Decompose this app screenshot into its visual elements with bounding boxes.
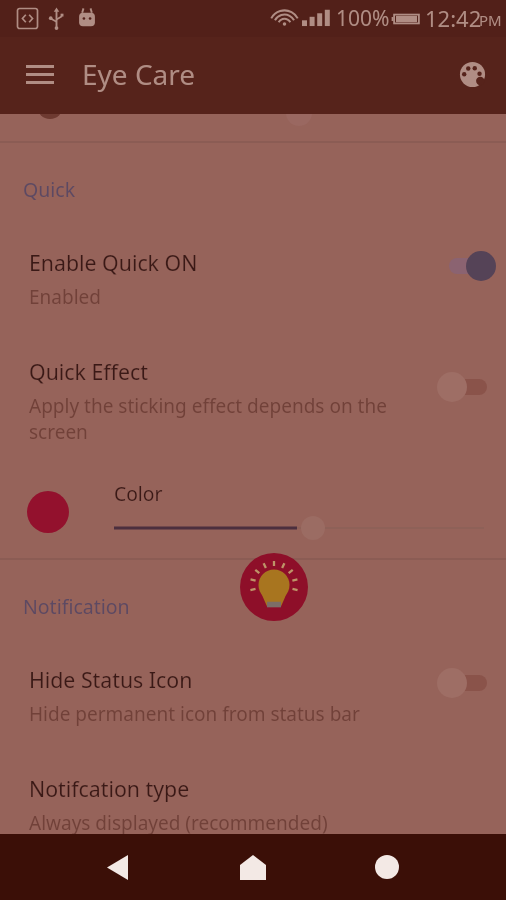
button[interactable]: Toggle bbox=[434, 365, 500, 409]
button[interactable]: Pick colour bbox=[27, 491, 69, 533]
staticText: Enable Quick ON bbox=[29, 248, 198, 277]
button[interactable]: Quick Effect bbox=[0, 357, 506, 386]
button[interactable]: Toggle bbox=[434, 244, 500, 288]
staticText: 100% bbox=[336, 4, 390, 33]
staticText: Hide permanent icon from status bar bbox=[29, 701, 360, 727]
staticText: Color bbox=[114, 480, 163, 506]
staticText: Quick bbox=[23, 176, 76, 203]
staticText: Notification bbox=[23, 593, 130, 620]
button[interactable]: Enable Quick ON bbox=[0, 248, 506, 277]
button[interactable]: Toggle bbox=[434, 661, 500, 705]
staticText: Eye Care bbox=[82, 55, 196, 93]
button[interactable]: Back bbox=[83, 834, 151, 900]
button[interactable]: Change colour palette bbox=[443, 45, 502, 104]
staticText: PM bbox=[479, 10, 502, 30]
button[interactable]: Hide Status Icon bbox=[0, 665, 506, 694]
staticText: Quick Effect bbox=[29, 357, 148, 386]
staticText: Hide Status Icon bbox=[29, 665, 193, 694]
staticText: Always displayed (recommended) bbox=[29, 810, 328, 836]
staticText: Enabled bbox=[29, 284, 101, 310]
staticText: Notifcation type bbox=[29, 774, 190, 803]
button[interactable]: Toggle eye care filter bbox=[240, 553, 308, 621]
staticText: 12:42 bbox=[425, 3, 482, 33]
button[interactable]: Notifcation type bbox=[0, 774, 506, 803]
button[interactable]: Open navigation menu bbox=[10, 38, 70, 98]
button[interactable]: Colour intensity bbox=[106, 516, 506, 540]
button[interactable]: Home bbox=[219, 834, 287, 900]
button[interactable]: Recent apps bbox=[353, 834, 421, 900]
staticText: Apply the sticking effect depends on the… bbox=[29, 393, 387, 445]
